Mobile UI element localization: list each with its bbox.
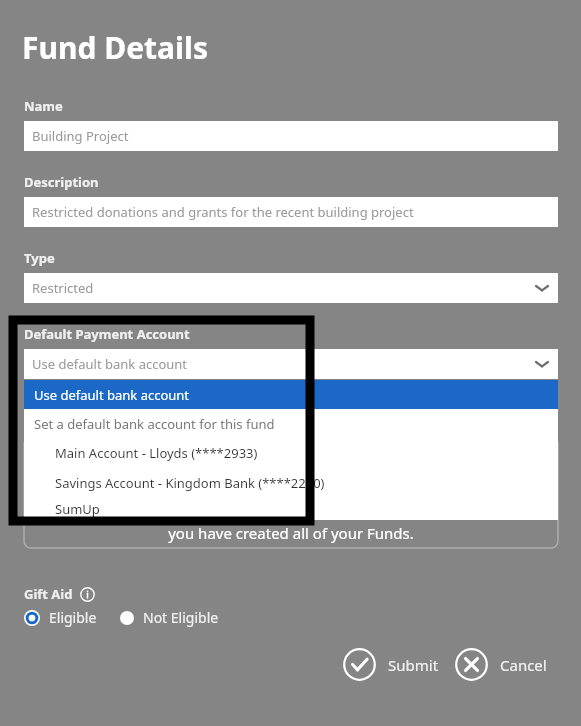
staticText: Restricted (32, 279, 94, 297)
button[interactable]: Cancel (455, 648, 547, 681)
staticText: Not Eligible (143, 608, 219, 627)
staticText: Gift Aid (24, 585, 73, 603)
button[interactable]: Submit (343, 648, 439, 681)
staticText: Eligible (49, 608, 97, 627)
staticText: Restricted donations and grants for the … (32, 203, 414, 221)
staticText: Default Payment Account (24, 325, 190, 343)
staticText: Use default bank account (34, 386, 190, 404)
staticText: Type (24, 249, 55, 267)
staticText: you have created all of your Funds. (168, 523, 414, 543)
button[interactable]: Use default bank account (24, 380, 558, 409)
button[interactable]: Restricted donations and grants for the … (24, 197, 558, 227)
staticText: Main Account - Lloyds (****2933) (55, 444, 258, 462)
staticText: SumUp (55, 500, 100, 518)
staticText: Submit (388, 655, 439, 675)
staticText: Building Project (32, 127, 129, 145)
staticText: Description (24, 173, 99, 191)
button[interactable]: Gift Aid information (80, 587, 95, 602)
staticText: Savings Account - Kingdom Bank (****2230… (55, 474, 325, 492)
staticText: Fund Details (22, 27, 209, 68)
button[interactable]: Eligible (24, 608, 97, 627)
button[interactable]: Not Eligible (120, 608, 219, 627)
button[interactable]: Building Project (24, 121, 558, 151)
button[interactable]: SumUp (24, 498, 558, 520)
staticText: Cancel (500, 655, 547, 675)
staticText: Name (24, 97, 63, 115)
button[interactable]: Savings Account - Kingdom Bank (****2230… (24, 468, 558, 498)
button[interactable]: Restricted (24, 273, 558, 303)
button[interactable]: Use default bank account (24, 349, 558, 379)
staticText: Use default bank account (32, 355, 188, 373)
staticText: Set a default bank account for this fund (34, 415, 275, 433)
button[interactable]: Main Account - Lloyds (****2933) (24, 438, 558, 468)
